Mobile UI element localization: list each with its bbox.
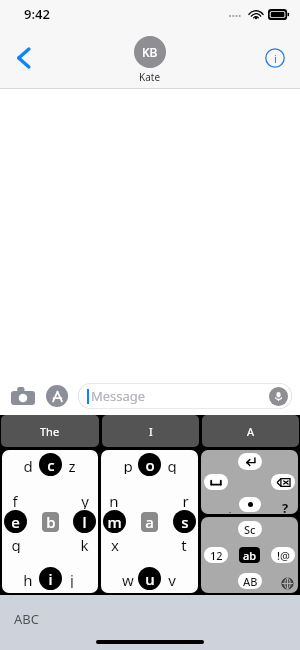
staticText: c bbox=[47, 455, 55, 475]
button[interactable]: Backspace bbox=[271, 474, 295, 490]
staticText: d bbox=[23, 456, 33, 474]
button[interactable]: Back bbox=[4, 38, 44, 78]
staticText: o bbox=[145, 455, 155, 475]
button[interactable]: z bbox=[63, 456, 81, 474]
button[interactable]: r bbox=[176, 491, 194, 509]
button[interactable]: e bbox=[4, 510, 27, 533]
button[interactable]: c bbox=[39, 453, 62, 476]
staticText: A bbox=[247, 424, 255, 439]
button[interactable]: Sc bbox=[238, 521, 262, 537]
staticText: ABC bbox=[14, 610, 39, 628]
button[interactable]: s bbox=[173, 510, 196, 533]
button[interactable]: A bbox=[202, 415, 299, 447]
staticText: 9:42 bbox=[24, 5, 50, 23]
staticText: Message bbox=[91, 387, 146, 405]
button[interactable]: Return bbox=[201, 450, 298, 514]
staticText: , bbox=[228, 499, 232, 513]
button[interactable]: Details bbox=[258, 41, 292, 75]
button[interactable]: j bbox=[63, 570, 81, 588]
button[interactable]: I bbox=[102, 415, 199, 447]
staticText: x bbox=[111, 535, 119, 553]
button[interactable]: KB bbox=[134, 36, 166, 84]
staticText: KB bbox=[142, 44, 158, 60]
staticText: g bbox=[11, 535, 21, 553]
button[interactable]: 12 bbox=[204, 547, 228, 563]
staticText: q bbox=[167, 456, 177, 474]
button[interactable]: ab bbox=[239, 547, 260, 563]
button[interactable]: u bbox=[138, 567, 161, 590]
button[interactable]: l bbox=[73, 510, 96, 533]
staticText: f bbox=[12, 491, 18, 509]
button[interactable]: q bbox=[163, 456, 181, 474]
staticText: AB bbox=[243, 574, 258, 589]
button[interactable]: h bbox=[19, 570, 37, 588]
staticText: n bbox=[109, 491, 119, 509]
staticText: l bbox=[82, 512, 87, 532]
staticText: a bbox=[145, 512, 154, 532]
staticText: ? bbox=[282, 499, 289, 513]
button[interactable]: !@ bbox=[271, 547, 295, 563]
button[interactable]: Space bbox=[204, 474, 228, 490]
staticText: h bbox=[23, 570, 33, 588]
staticText: The bbox=[40, 424, 60, 439]
button[interactable]: p bbox=[119, 456, 137, 474]
button[interactable]: v bbox=[163, 570, 181, 588]
button[interactable]: b bbox=[42, 512, 59, 532]
staticText: w bbox=[122, 570, 134, 588]
button[interactable]: Return bbox=[238, 453, 262, 470]
button[interactable]: g bbox=[7, 535, 25, 553]
button[interactable]: n bbox=[105, 491, 123, 509]
staticText: Kate bbox=[139, 70, 161, 84]
button[interactable]: k bbox=[75, 535, 93, 553]
staticText: s bbox=[181, 512, 189, 532]
staticText: v bbox=[168, 570, 176, 588]
button[interactable]: , bbox=[223, 499, 237, 513]
staticText: p bbox=[123, 456, 133, 474]
button[interactable]: o bbox=[138, 453, 161, 476]
staticText: u bbox=[145, 569, 155, 589]
button[interactable]: d bbox=[2, 450, 98, 593]
button[interactable]: p bbox=[101, 450, 198, 593]
button[interactable]: i bbox=[39, 567, 62, 590]
button[interactable]: y bbox=[76, 491, 94, 509]
button[interactable]: Camera bbox=[8, 381, 38, 411]
button[interactable]: Dictate bbox=[269, 387, 288, 406]
staticText: m bbox=[107, 512, 122, 532]
button[interactable]: ? bbox=[278, 499, 292, 513]
button[interactable]: AB bbox=[238, 573, 262, 589]
button[interactable]: a bbox=[141, 512, 158, 532]
staticText: j bbox=[70, 570, 74, 588]
button[interactable]: t bbox=[175, 535, 193, 553]
button[interactable]: d bbox=[19, 456, 37, 474]
button[interactable]: ABC bbox=[14, 610, 39, 628]
button[interactable]: Message bbox=[78, 383, 292, 409]
staticText: ab bbox=[243, 548, 257, 563]
button[interactable]: The bbox=[1, 415, 99, 447]
staticText: !@ bbox=[277, 548, 290, 563]
staticText: Sc bbox=[244, 522, 256, 537]
staticText: 12 bbox=[210, 548, 223, 563]
button[interactable]: Sc bbox=[201, 517, 298, 593]
staticText: b bbox=[46, 512, 56, 532]
staticText: r bbox=[182, 491, 189, 509]
button[interactable]: x bbox=[106, 535, 124, 553]
button[interactable]: App Store bbox=[42, 381, 72, 411]
staticText: y bbox=[81, 491, 89, 509]
button[interactable]: w bbox=[119, 570, 137, 588]
staticText: e bbox=[11, 512, 20, 532]
staticText: I bbox=[149, 424, 153, 439]
button[interactable]: Period bbox=[239, 497, 261, 512]
staticText: t bbox=[181, 535, 187, 553]
staticText: i bbox=[274, 51, 277, 66]
staticText: i bbox=[48, 569, 53, 589]
button[interactable]: m bbox=[103, 510, 126, 533]
staticText: z bbox=[68, 456, 76, 474]
staticText: k bbox=[80, 535, 89, 553]
button[interactable]: f bbox=[6, 491, 24, 509]
button[interactable]: Switch keyboard bbox=[280, 576, 294, 590]
